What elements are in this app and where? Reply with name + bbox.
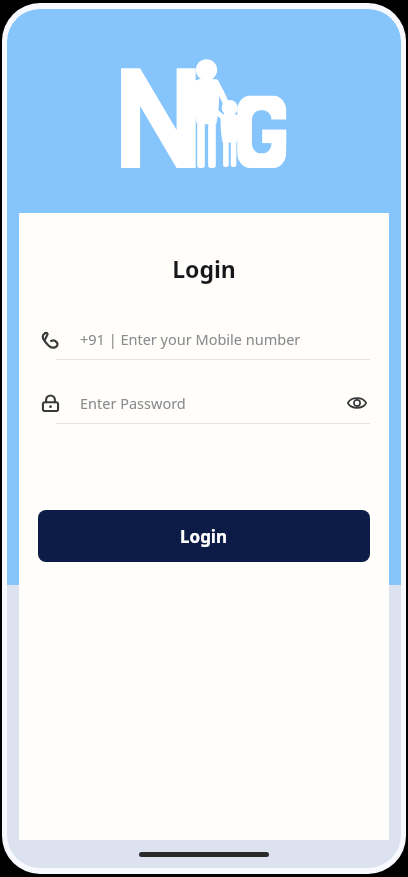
button[interactable]: Show password	[344, 390, 370, 416]
staticText: Enter Password	[80, 393, 344, 413]
staticText: +91 | Enter your Mobile number	[80, 329, 370, 349]
other: Mobile number	[38, 327, 62, 351]
button[interactable]: Password	[38, 386, 370, 420]
staticText: Login	[180, 525, 228, 548]
button[interactable]: Login	[38, 510, 370, 562]
button[interactable]: Mobile number	[38, 322, 370, 356]
staticText: Login	[19, 253, 389, 284]
other: Password	[38, 391, 62, 415]
